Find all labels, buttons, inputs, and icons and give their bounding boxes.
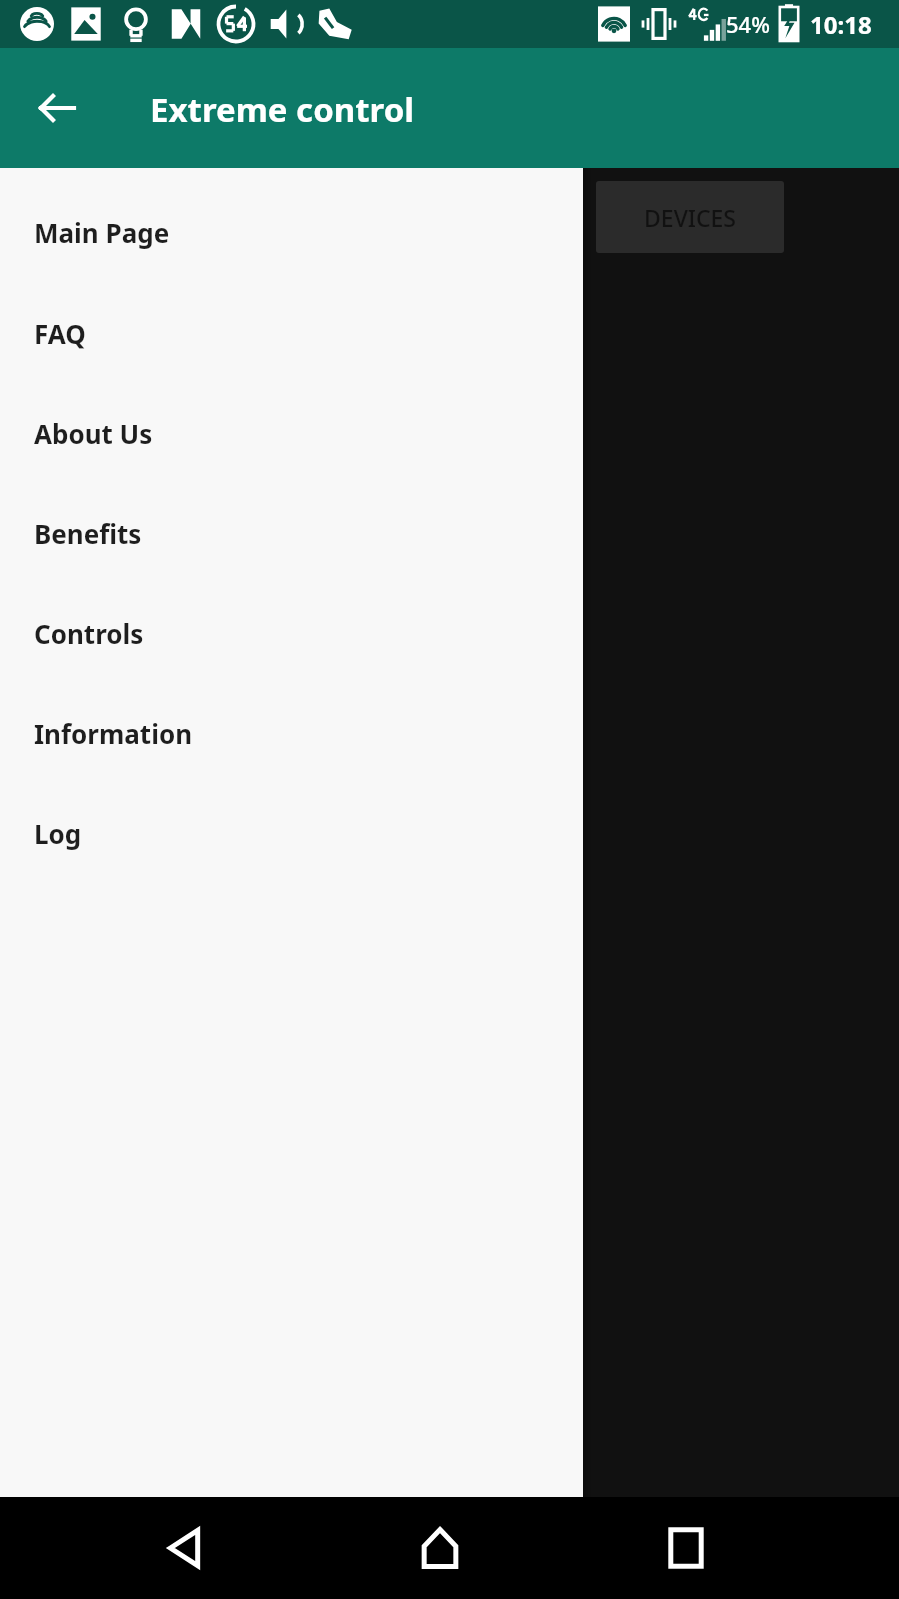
staticText: FAQ xyxy=(34,316,86,351)
staticText: 54% xyxy=(726,9,770,39)
staticText: Benefits xyxy=(34,516,142,551)
button[interactable]: DEVICES xyxy=(596,181,784,253)
button[interactable]: Main Page xyxy=(0,168,583,283)
staticText: DEVICES xyxy=(644,202,736,233)
button[interactable]: Home xyxy=(380,1497,500,1599)
button[interactable]: Recent apps xyxy=(626,1497,746,1599)
staticText: Log xyxy=(34,816,82,851)
button[interactable]: FAQ xyxy=(0,283,583,383)
button[interactable]: Back xyxy=(20,71,94,145)
button[interactable]: Controls xyxy=(0,583,583,683)
button[interactable]: Benefits xyxy=(0,483,583,583)
button[interactable]: Log xyxy=(0,783,583,883)
button[interactable]: Back xyxy=(128,1497,248,1599)
staticText: Controls xyxy=(34,616,144,651)
staticText: Information xyxy=(34,716,193,751)
button[interactable]: Information xyxy=(0,683,583,783)
staticText: Main Page xyxy=(34,215,170,250)
staticText: About Us xyxy=(34,416,153,451)
staticText: Extreme control xyxy=(150,87,415,132)
staticText: 10:18 xyxy=(810,8,872,41)
button[interactable]: About Us xyxy=(0,383,583,483)
